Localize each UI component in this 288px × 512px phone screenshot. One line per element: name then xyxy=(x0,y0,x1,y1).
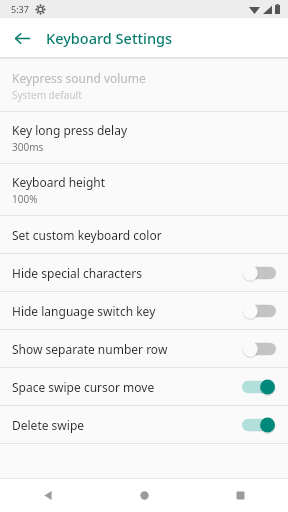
button[interactable]: Back xyxy=(0,479,96,512)
staticText: Key long press delay xyxy=(12,122,128,138)
button[interactable]: Space swipe cursor move xyxy=(0,368,288,405)
button[interactable]: Back xyxy=(6,22,38,54)
staticText: Keypress sound volume xyxy=(12,70,146,86)
button[interactable]: Show separate number row xyxy=(0,330,288,367)
staticText: Hide special characters xyxy=(12,265,242,281)
button[interactable]: Hide language switch key xyxy=(0,292,288,329)
button[interactable]: Set custom keyboard color xyxy=(0,216,288,253)
button[interactable]: Hide special characters xyxy=(0,254,288,291)
staticText: Keyboard height xyxy=(12,174,106,190)
staticText: Set custom keyboard color xyxy=(12,227,162,243)
staticText: Delete swipe xyxy=(12,417,242,433)
button[interactable]: Keypress sound volume xyxy=(0,60,288,111)
staticText: System default xyxy=(12,88,82,102)
staticText: 5:37 xyxy=(11,3,29,15)
staticText: 300ms xyxy=(12,140,44,154)
button[interactable]: Recent apps xyxy=(192,479,288,512)
button[interactable]: Keyboard height xyxy=(0,164,288,215)
button[interactable]: Delete swipe xyxy=(0,406,288,443)
button[interactable]: Home xyxy=(96,479,192,512)
staticText: 100% xyxy=(12,192,38,206)
staticText: Space swipe cursor move xyxy=(12,379,242,395)
staticText: Show separate number row xyxy=(12,341,242,357)
button[interactable]: Key long press delay xyxy=(0,112,288,163)
staticText: Hide language switch key xyxy=(12,303,242,319)
staticText: Keyboard Settings xyxy=(46,28,173,48)
